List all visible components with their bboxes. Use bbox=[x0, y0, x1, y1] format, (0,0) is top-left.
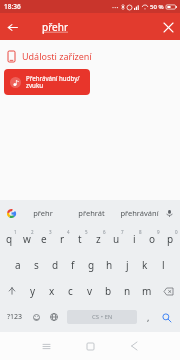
staticText: n bbox=[124, 284, 131, 298]
button[interactable]: Change language bbox=[45, 304, 63, 330]
staticText: přehrávání bbox=[120, 208, 159, 218]
button[interactable]: q bbox=[1, 226, 18, 252]
button[interactable]: t bbox=[71, 226, 89, 252]
staticText: o bbox=[149, 232, 156, 246]
staticText: ?123 bbox=[7, 312, 23, 322]
button[interactable]: s bbox=[27, 252, 46, 278]
staticText: g bbox=[88, 258, 95, 272]
button[interactable]: Home bbox=[68, 332, 112, 360]
staticText: u bbox=[113, 232, 120, 246]
staticText: 0 bbox=[175, 229, 178, 235]
button[interactable]: d bbox=[46, 252, 64, 278]
staticText: Přehrávání hudby/ zvuku bbox=[26, 74, 80, 90]
button[interactable]: Přehrávání hudby/ zvuku bbox=[4, 69, 90, 95]
button[interactable]: Recents bbox=[24, 332, 68, 360]
button[interactable]: přehr bbox=[42, 13, 69, 40]
button[interactable]: i bbox=[125, 226, 143, 252]
staticText: s bbox=[34, 258, 39, 272]
staticText: m bbox=[142, 284, 152, 298]
staticText: a bbox=[15, 258, 21, 272]
staticText: d bbox=[52, 258, 59, 272]
button[interactable]: z bbox=[89, 226, 107, 252]
staticText: 1 bbox=[14, 229, 17, 235]
staticText: p bbox=[167, 232, 174, 246]
button[interactable]: f bbox=[64, 252, 82, 278]
button[interactable]: y bbox=[23, 278, 42, 304]
staticText: y bbox=[30, 284, 36, 298]
staticText: j bbox=[126, 258, 129, 272]
button[interactable]: j bbox=[118, 252, 136, 278]
staticText: i bbox=[133, 232, 136, 246]
staticText: 6 bbox=[103, 229, 106, 235]
button[interactable]: h bbox=[100, 252, 118, 278]
staticText: f bbox=[71, 258, 75, 272]
staticText: x bbox=[49, 284, 55, 298]
staticText: 2 bbox=[31, 229, 34, 235]
button[interactable]: Emoji bbox=[27, 304, 45, 330]
button[interactable]: w bbox=[18, 226, 35, 252]
button[interactable]: přehrát bbox=[67, 200, 115, 226]
button[interactable]: ?123 bbox=[3, 304, 27, 330]
staticText: r bbox=[60, 232, 65, 246]
staticText: w bbox=[23, 232, 31, 246]
button[interactable]: l bbox=[154, 252, 172, 278]
button[interactable]: n bbox=[118, 278, 137, 304]
button[interactable]: Search bbox=[155, 304, 177, 330]
button[interactable]: m bbox=[137, 278, 156, 304]
staticText: 4 bbox=[67, 229, 70, 235]
staticText: z bbox=[96, 232, 101, 246]
button[interactable]: v bbox=[80, 278, 99, 304]
button[interactable]: přehr bbox=[18, 200, 67, 226]
staticText: Události zařízení bbox=[22, 50, 92, 62]
staticText: 8 bbox=[139, 229, 142, 235]
staticText: přehrát bbox=[78, 208, 105, 218]
button[interactable]: Shift bbox=[0, 278, 23, 304]
staticText: 18:36 bbox=[4, 2, 21, 11]
staticText: t bbox=[78, 232, 82, 246]
button[interactable]: Back bbox=[0, 15, 24, 39]
button[interactable]: , bbox=[141, 304, 155, 330]
staticText: e bbox=[41, 232, 47, 246]
button[interactable]: přehrávání bbox=[115, 200, 163, 226]
staticText: 7 bbox=[121, 229, 124, 235]
staticText: k bbox=[142, 258, 148, 272]
button[interactable]: o bbox=[143, 226, 161, 252]
staticText: přehr bbox=[33, 208, 53, 218]
staticText: 5 bbox=[85, 229, 88, 235]
button[interactable]: Backspace bbox=[156, 278, 180, 304]
staticText: q bbox=[6, 232, 13, 246]
button[interactable]: b bbox=[99, 278, 118, 304]
button[interactable]: c bbox=[61, 278, 80, 304]
button[interactable]: Voice input bbox=[163, 207, 175, 219]
button[interactable]: k bbox=[136, 252, 154, 278]
staticText: 9 bbox=[157, 229, 160, 235]
staticText: , bbox=[147, 311, 150, 323]
staticText: 50 % bbox=[150, 3, 164, 11]
staticText: c bbox=[68, 284, 73, 298]
button[interactable]: p bbox=[161, 226, 179, 252]
staticText: CS • EN bbox=[92, 313, 113, 321]
button[interactable]: g bbox=[82, 252, 100, 278]
staticText: 3 bbox=[49, 229, 52, 235]
button[interactable]: Back bbox=[112, 332, 156, 360]
button[interactable]: e bbox=[35, 226, 53, 252]
button[interactable]: Clear bbox=[156, 15, 180, 39]
staticText: h bbox=[106, 258, 113, 272]
staticText: přehr bbox=[42, 20, 69, 34]
staticText: v bbox=[87, 284, 93, 298]
button[interactable]: x bbox=[42, 278, 61, 304]
button[interactable]: a bbox=[8, 252, 27, 278]
button[interactable]: CS • EN bbox=[67, 310, 137, 324]
staticText: l bbox=[162, 258, 165, 272]
button[interactable]: Google bbox=[5, 207, 18, 220]
staticText: b bbox=[105, 284, 112, 298]
button[interactable]: r bbox=[53, 226, 71, 252]
button[interactable]: u bbox=[107, 226, 125, 252]
